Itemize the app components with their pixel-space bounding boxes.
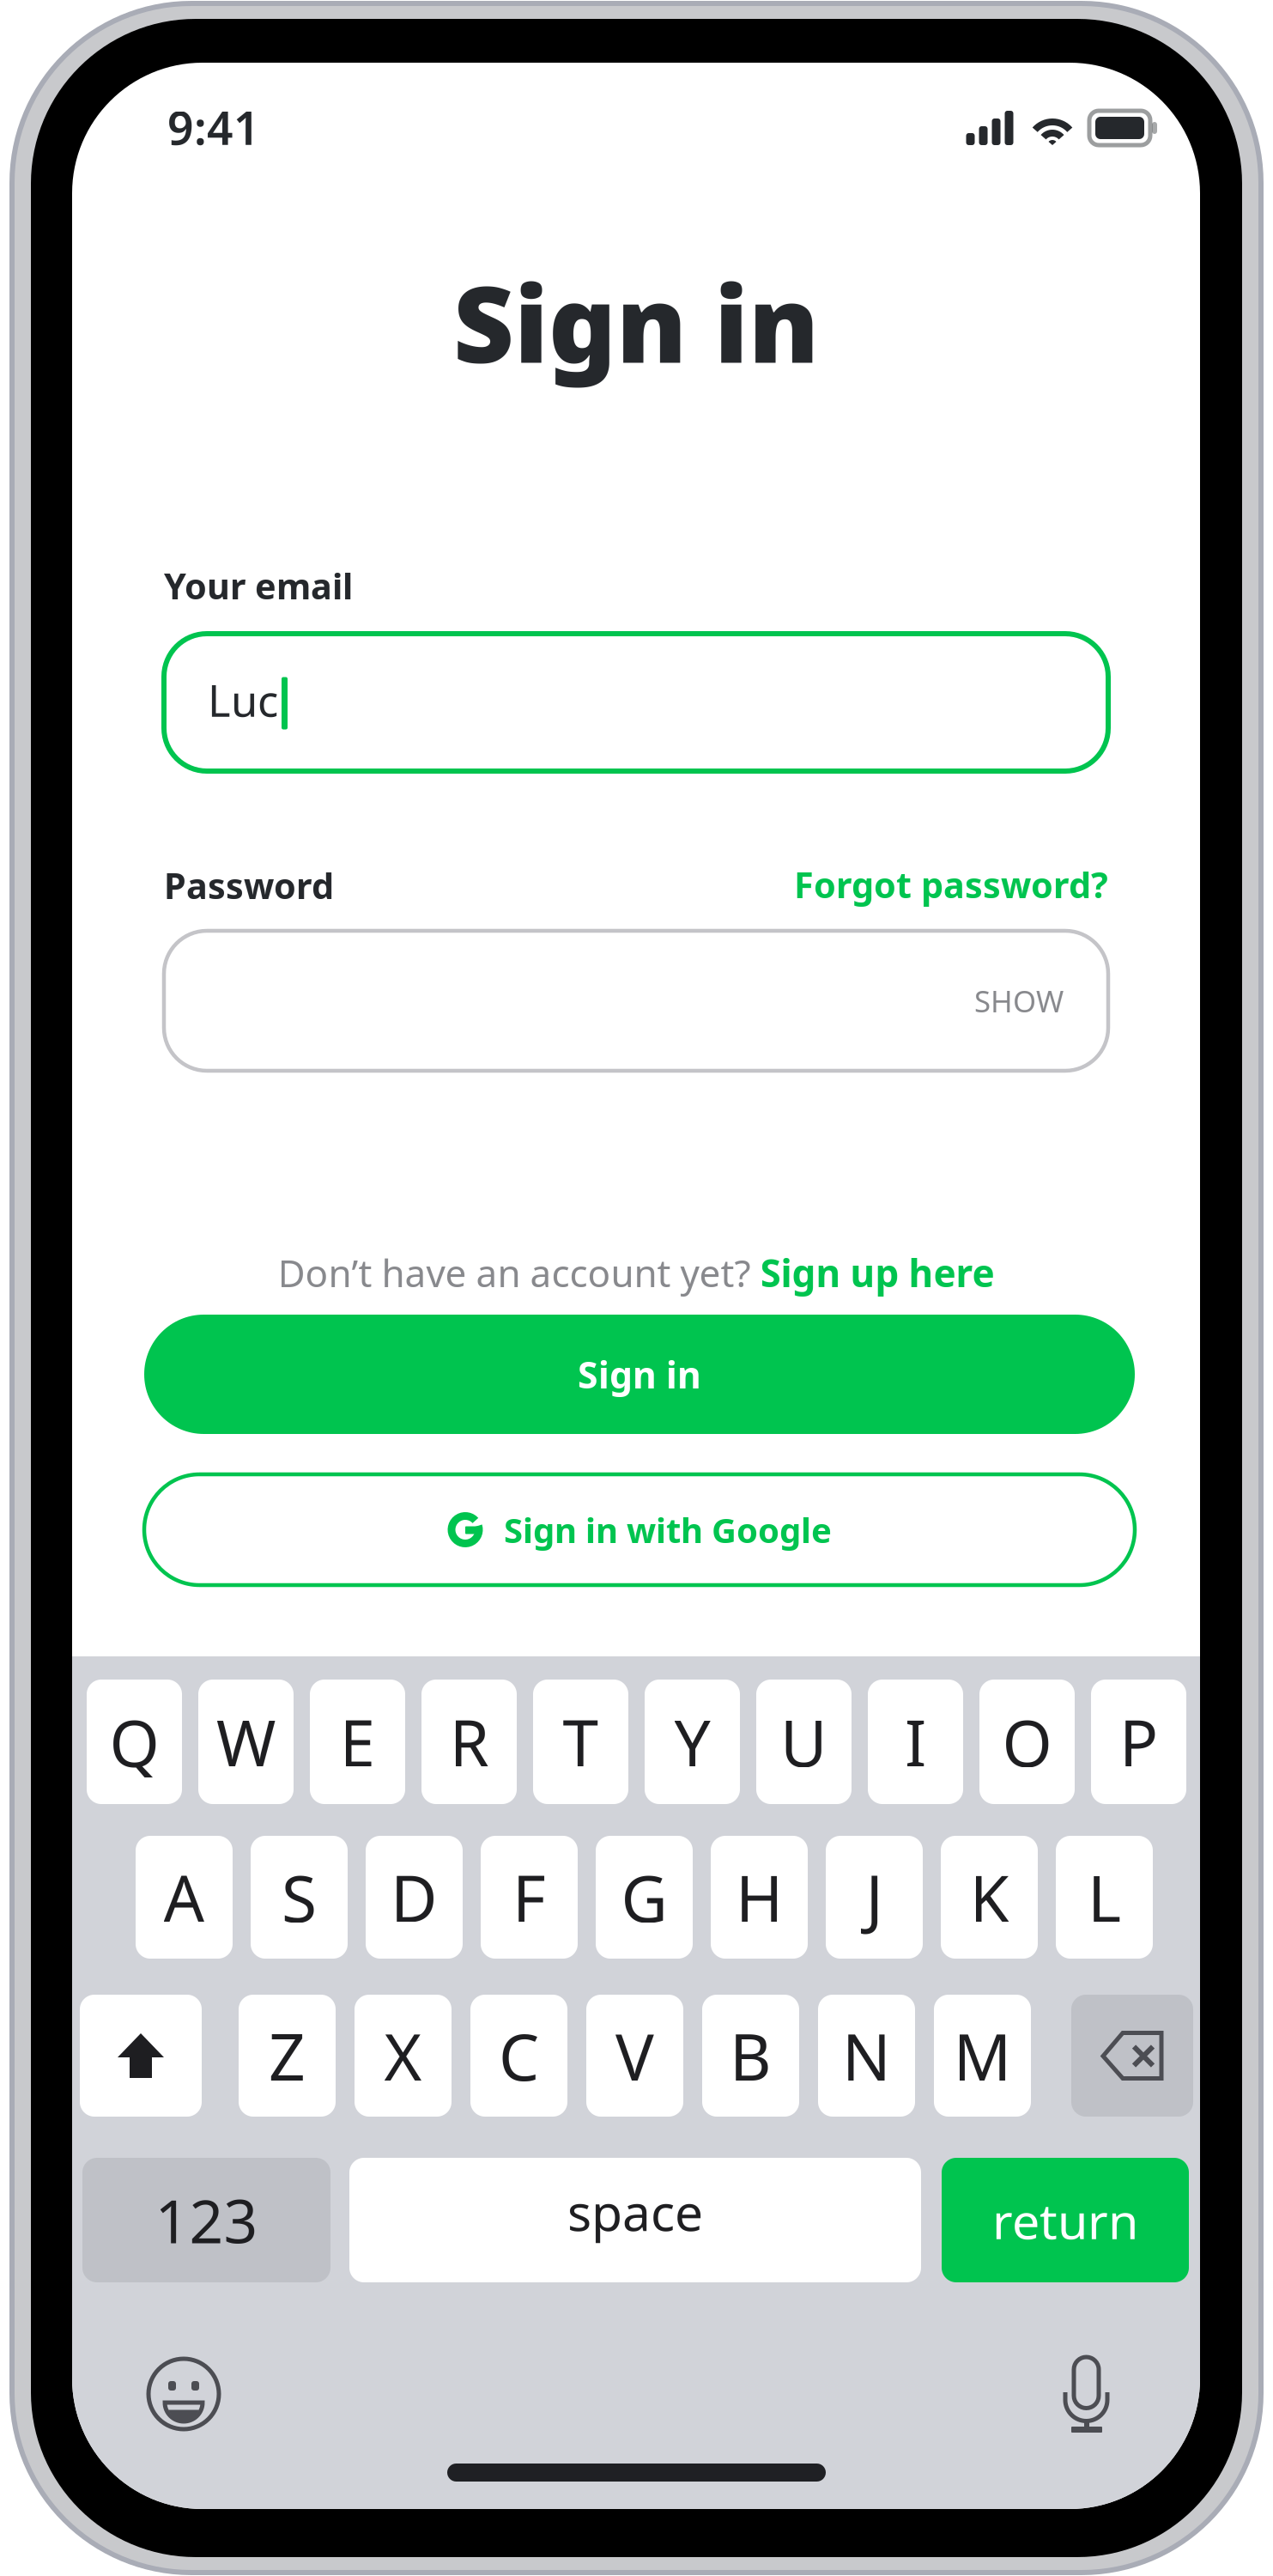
button[interactable]: H xyxy=(711,1836,808,1959)
button[interactable]: Dictation xyxy=(1064,2355,1110,2433)
staticText: SHOW xyxy=(974,981,1064,1021)
staticText: Don’t have an account yet? xyxy=(278,1247,760,1298)
staticText: J xyxy=(866,1855,883,1940)
button[interactable]: Q xyxy=(87,1680,182,1804)
button[interactable]: P xyxy=(1091,1680,1186,1804)
staticText: Z xyxy=(269,2013,306,2098)
staticText: B xyxy=(730,2013,772,2098)
staticText: Sign in xyxy=(453,252,819,392)
staticText: A xyxy=(164,1855,205,1940)
staticText: 9:41 xyxy=(167,97,260,157)
button[interactable]: return xyxy=(942,2158,1189,2282)
staticText: Your email xyxy=(164,562,353,609)
button[interactable]: J xyxy=(826,1836,923,1959)
staticText: Y xyxy=(674,1699,710,1784)
staticText: S xyxy=(282,1855,317,1940)
staticText: T xyxy=(563,1699,599,1784)
button[interactable]: Emoji keyboard xyxy=(146,2356,221,2432)
button[interactable]: space xyxy=(349,2158,921,2282)
button[interactable]: D xyxy=(366,1836,463,1959)
button[interactable]: U xyxy=(756,1680,852,1804)
staticText: R xyxy=(449,1699,489,1784)
staticText: P xyxy=(1119,1699,1158,1784)
staticText: L xyxy=(1088,1855,1121,1940)
button[interactable]: R xyxy=(421,1680,517,1804)
staticText: H xyxy=(736,1855,783,1940)
button[interactable] xyxy=(80,1995,202,2117)
staticText: D xyxy=(391,1855,438,1940)
button[interactable]: W xyxy=(198,1680,294,1804)
button[interactable]: Z xyxy=(239,1995,336,2117)
button[interactable]: Sign in with Google xyxy=(144,1474,1135,1585)
button[interactable]: Forgot password? xyxy=(593,866,1108,903)
button[interactable]: F xyxy=(481,1836,578,1959)
button[interactable]: B xyxy=(702,1995,799,2117)
staticText: O xyxy=(1002,1699,1052,1784)
staticText: Sign in xyxy=(578,1350,701,1399)
button[interactable]: Sign up here xyxy=(760,1247,994,1298)
staticText: W xyxy=(216,1699,276,1784)
staticText: U xyxy=(780,1699,827,1784)
button[interactable]: O xyxy=(979,1680,1075,1804)
button[interactable]: G xyxy=(596,1836,693,1959)
staticText: Q xyxy=(109,1699,159,1784)
button[interactable]: L xyxy=(1056,1836,1153,1959)
button[interactable]: E xyxy=(310,1680,405,1804)
staticText: I xyxy=(905,1699,926,1784)
staticText: 123 xyxy=(155,2181,258,2260)
button[interactable]: Y xyxy=(645,1680,740,1804)
staticText: E xyxy=(339,1699,376,1784)
button[interactable]: I xyxy=(868,1680,963,1804)
button[interactable]: S xyxy=(251,1836,348,1959)
staticText: X xyxy=(384,2013,422,2098)
button[interactable]: SHOW xyxy=(164,931,1108,1071)
button[interactable]: A xyxy=(136,1836,233,1959)
staticText: V xyxy=(615,2013,654,2098)
staticText: F xyxy=(512,1855,546,1940)
button[interactable]: Sign in xyxy=(144,1315,1135,1434)
button[interactable]: K xyxy=(941,1836,1038,1959)
staticText: C xyxy=(499,2013,539,2098)
button[interactable] xyxy=(1071,1995,1193,2117)
staticText: Forgot password? xyxy=(794,861,1108,908)
staticText: space xyxy=(567,2178,703,2245)
staticText: K xyxy=(970,1855,1009,1940)
button[interactable]: 123 xyxy=(82,2158,330,2282)
staticText: M xyxy=(953,2013,1012,2098)
button[interactable]: N xyxy=(818,1995,915,2117)
button[interactable]: T xyxy=(533,1680,628,1804)
staticText: Luc xyxy=(208,671,278,729)
button[interactable]: X xyxy=(355,1995,452,2117)
button[interactable]: C xyxy=(470,1995,567,2117)
staticText: G xyxy=(621,1855,667,1940)
staticText: Sign in with Google xyxy=(504,1507,832,1552)
staticText: return xyxy=(992,2187,1138,2253)
button[interactable]: V xyxy=(586,1995,683,2117)
button[interactable]: Luc xyxy=(164,634,1108,771)
staticText: Sign up here xyxy=(760,1247,994,1298)
staticText: N xyxy=(842,2013,891,2098)
button[interactable]: M xyxy=(934,1995,1031,2117)
staticText: Password xyxy=(164,862,334,909)
